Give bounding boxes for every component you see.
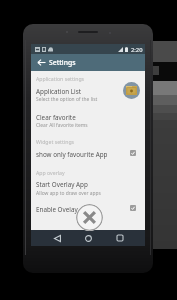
staticText: Clear favorite xyxy=(36,113,76,122)
staticText: Select the option of the list xyxy=(36,96,98,103)
staticText: Allow app to draw over apps xyxy=(36,190,101,197)
button[interactable]: show only favourite App xyxy=(31,145,145,161)
button[interactable]: Clear favorite xyxy=(31,108,145,124)
button[interactable]: Enable Ovelay xyxy=(31,200,145,216)
staticText: 2:20 xyxy=(131,46,143,54)
button[interactable]: Close overlay xyxy=(76,204,103,231)
button[interactable]: Start Overlay App xyxy=(31,175,145,191)
staticText: Start Overlay App xyxy=(36,180,88,189)
button[interactable]: App icon xyxy=(123,82,140,99)
button[interactable]: Back xyxy=(33,54,50,71)
staticText: Clear All favorite items xyxy=(36,122,88,129)
button[interactable]: Toggle xyxy=(126,201,140,215)
button[interactable]: Back xyxy=(49,230,65,246)
button[interactable]: Toggle xyxy=(126,146,140,160)
staticText: show only favourite App xyxy=(36,150,108,159)
button[interactable]: Home xyxy=(80,230,96,246)
staticText: Settings xyxy=(49,58,76,67)
staticText: App overlay xyxy=(36,169,65,176)
staticText: Widget settings xyxy=(36,138,75,145)
staticText: Application settings xyxy=(36,75,85,82)
button[interactable]: Application List xyxy=(31,82,145,98)
button[interactable]: Recents xyxy=(112,230,128,246)
staticText: Enable Ovelay xyxy=(36,205,78,214)
staticText: Application List xyxy=(36,87,82,96)
